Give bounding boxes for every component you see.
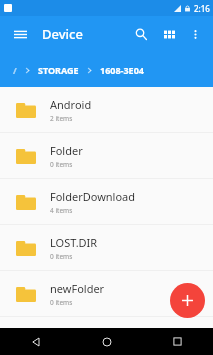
button[interactable]: More options (184, 23, 206, 45)
staticText: 2:16 (194, 3, 210, 14)
button[interactable]: Android (0, 87, 213, 132)
button[interactable]: FolderDownload (0, 179, 213, 224)
staticText: LOST.DIR (50, 235, 98, 250)
staticText: 0 items (50, 160, 73, 169)
staticText: Folder (50, 143, 83, 158)
staticText: 4 items (50, 206, 73, 215)
button[interactable]: Grid view (156, 21, 182, 47)
button[interactable]: newFolder (0, 271, 213, 316)
button[interactable]: Back (0, 328, 71, 355)
button[interactable]: Home (71, 328, 142, 355)
staticText: Android (50, 97, 92, 112)
button[interactable]: STORAGE (38, 64, 79, 76)
button[interactable]: Add new folder (170, 283, 205, 318)
button[interactable]: Recent apps (142, 328, 213, 355)
button[interactable]: Folder (0, 133, 213, 178)
staticText: Device (42, 25, 83, 43)
staticText: 0 items (50, 252, 73, 261)
staticText: 0 items (50, 298, 73, 307)
button[interactable]: Open navigation drawer (7, 21, 33, 47)
button[interactable]: Search (128, 21, 154, 47)
staticText: newFolder (50, 281, 105, 296)
button[interactable]: 1608-3E04 (100, 64, 144, 76)
button[interactable]: LOST.DIR (0, 225, 213, 270)
staticText: FolderDownload (50, 189, 136, 204)
button[interactable]: / (13, 64, 17, 76)
staticText: 2 items (50, 114, 73, 123)
